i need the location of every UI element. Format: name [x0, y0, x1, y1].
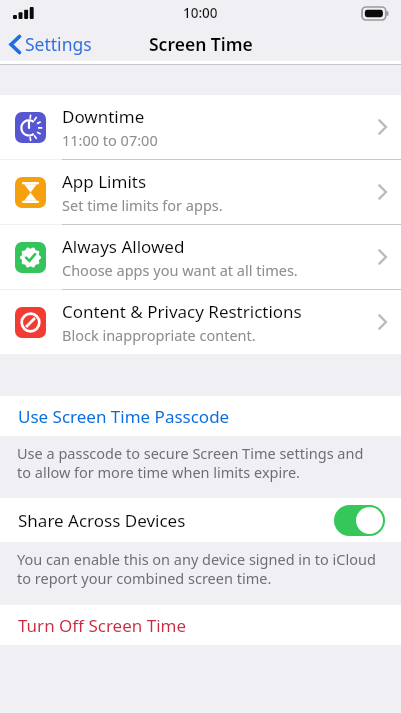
staticText: 10:00	[183, 4, 218, 22]
button[interactable]: Downtime	[0, 95, 401, 159]
staticText: 11:00 to 07:00	[62, 130, 158, 150]
staticText: You can enable this on any device signed…	[17, 549, 381, 588]
button[interactable]: Always Allowed	[0, 225, 401, 289]
staticText: Downtime	[62, 105, 145, 128]
staticText: Turn Off Screen Time	[18, 614, 187, 637]
staticText: Share Across Devices	[18, 509, 334, 532]
staticText: App Limits	[62, 170, 147, 193]
button[interactable]: Share Across Devices toggle, on	[334, 505, 385, 536]
button[interactable]: Content & Privacy Restrictions	[0, 290, 401, 354]
staticText: Settings	[25, 32, 92, 56]
staticText: Set time limits for apps.	[62, 195, 223, 215]
button[interactable]: Settings	[0, 28, 102, 60]
button[interactable]: Use Screen Time Passcode	[0, 396, 401, 436]
staticText: Use a passcode to secure Screen Time set…	[17, 443, 381, 482]
staticText: Always Allowed	[62, 235, 185, 258]
staticText: Choose apps you want at all times.	[62, 260, 298, 280]
staticText: Use Screen Time Passcode	[18, 405, 230, 428]
staticText: Content & Privacy Restrictions	[62, 300, 302, 323]
button[interactable]: Share Across Devices	[0, 498, 401, 542]
staticText: Block inappropriate content.	[62, 325, 256, 345]
button[interactable]: Turn Off Screen Time	[0, 605, 401, 645]
staticText: Screen Time	[149, 32, 253, 56]
button[interactable]: App Limits	[0, 160, 401, 224]
